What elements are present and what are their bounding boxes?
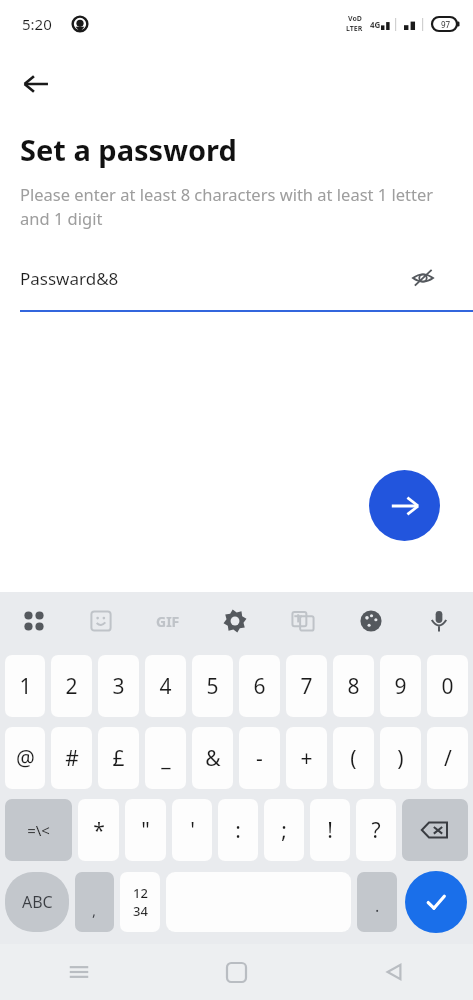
- button[interactable]: (: [333, 727, 374, 789]
- button[interactable]: ,: [75, 872, 114, 932]
- button[interactable]: Back: [315, 944, 473, 1000]
- button[interactable]: £: [98, 727, 139, 789]
- staticText: 34: [133, 902, 148, 920]
- staticText: =\<: [27, 820, 50, 840]
- staticText: ': [190, 816, 195, 845]
- button[interactable]: ): [380, 727, 421, 789]
- button[interactable]: :: [218, 799, 258, 861]
- button[interactable]: 7: [286, 655, 327, 717]
- staticText: 6: [253, 672, 266, 701]
- staticText: ?: [371, 816, 381, 845]
- button[interactable]: ABC: [5, 872, 69, 932]
- staticText: 5:20: [22, 14, 52, 34]
- button[interactable]: Stickers: [67, 592, 134, 650]
- button[interactable]: +: [286, 727, 327, 789]
- button[interactable]: Themes: [337, 592, 405, 650]
- button[interactable]: _: [145, 727, 186, 789]
- staticText: 2: [65, 672, 78, 701]
- button[interactable]: Settings: [201, 592, 269, 650]
- staticText: (: [350, 744, 357, 773]
- staticText: ,: [92, 900, 97, 920]
- staticText: ;: [281, 816, 287, 845]
- staticText: *: [93, 816, 105, 845]
- staticText: /: [444, 744, 452, 773]
- button[interactable]: Recents: [0, 944, 157, 1000]
- button[interactable]: /: [427, 727, 468, 789]
- button[interactable]: &: [192, 727, 233, 789]
- button[interactable]: =\<: [5, 799, 72, 861]
- staticText: 1: [19, 672, 32, 701]
- button[interactable]: Translate: [269, 592, 337, 650]
- button[interactable]: 3: [98, 655, 139, 717]
- staticText: +: [300, 744, 313, 773]
- staticText: 7: [300, 672, 313, 701]
- button[interactable]: Continue: [369, 470, 440, 541]
- button[interactable]: 0: [427, 655, 468, 717]
- staticText: &: [205, 744, 221, 773]
- staticText: 4G: [370, 19, 381, 30]
- staticText: 8: [347, 672, 360, 701]
- button[interactable]: 9: [380, 655, 421, 717]
- button[interactable]: ?: [356, 799, 396, 861]
- button[interactable]: 6: [239, 655, 280, 717]
- button[interactable]: Apps: [0, 592, 67, 650]
- button[interactable]: Back: [12, 60, 60, 108]
- staticText: £: [112, 744, 125, 773]
- button[interactable]: @: [5, 727, 45, 789]
- button[interactable]: .: [357, 872, 397, 932]
- button[interactable]: 5: [192, 655, 233, 717]
- button[interactable]: Home: [157, 944, 315, 1000]
- staticText: !: [327, 816, 333, 845]
- button[interactable]: GIF: [134, 592, 201, 650]
- staticText: 4: [159, 672, 172, 701]
- staticText: VoD: [348, 14, 362, 24]
- staticText: GIF: [156, 612, 180, 631]
- staticText: -: [256, 744, 263, 773]
- staticText: 0: [441, 672, 454, 701]
- button[interactable]: #: [51, 727, 92, 789]
- staticText: 12: [133, 884, 148, 902]
- button[interactable]: ;: [264, 799, 304, 861]
- staticText: Passward&8: [20, 267, 119, 290]
- button[interactable]: 4: [145, 655, 186, 717]
- button[interactable]: 2: [51, 655, 92, 717]
- button[interactable]: Hide password: [401, 256, 445, 300]
- button[interactable]: Numbers: [120, 872, 160, 932]
- staticText: _: [161, 744, 171, 773]
- staticText: Please enter at least 8 characters with …: [20, 183, 449, 230]
- staticText: 9: [394, 672, 407, 701]
- button[interactable]: ': [172, 799, 212, 861]
- staticText: ): [397, 744, 404, 773]
- staticText: ABC: [22, 891, 53, 913]
- staticText: LTER: [346, 24, 363, 34]
- button[interactable]: 1: [5, 655, 45, 717]
- button[interactable]: 8: [333, 655, 374, 717]
- button[interactable]: Passward&8: [20, 256, 473, 300]
- button[interactable]: ": [125, 799, 166, 861]
- button[interactable]: -: [239, 727, 280, 789]
- staticText: ": [141, 816, 150, 845]
- staticText: @: [16, 744, 35, 773]
- staticText: 97: [441, 19, 451, 30]
- staticText: Set a password: [20, 130, 237, 169]
- button[interactable]: Backspace: [402, 799, 468, 861]
- staticText: :: [235, 816, 241, 845]
- staticText: #: [65, 744, 79, 773]
- button[interactable]: !: [310, 799, 350, 861]
- button[interactable]: Enter: [405, 871, 467, 933]
- staticText: 5: [206, 672, 219, 701]
- staticText: 3: [112, 672, 125, 701]
- button[interactable]: *: [78, 799, 119, 861]
- staticText: .: [375, 895, 380, 917]
- button[interactable]: Voice input: [405, 592, 473, 650]
